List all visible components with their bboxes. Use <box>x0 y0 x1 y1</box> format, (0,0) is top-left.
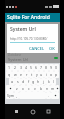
button[interactable]: OK <box>48 46 56 51</box>
button[interactable]: 4 <box>24 64 29 71</box>
button[interactable]: Back <box>12 107 21 116</box>
staticText: m <box>51 86 55 91</box>
staticText: u <box>40 72 43 77</box>
button[interactable]: u <box>39 71 44 78</box>
button[interactable]: p <box>54 71 59 78</box>
button[interactable]: . <box>46 92 51 99</box>
button[interactable]: i <box>44 71 49 78</box>
button[interactable]: 3 <box>18 64 24 71</box>
button[interactable]: l <box>51 78 56 85</box>
button[interactable] <box>6 85 14 92</box>
button[interactable]: s <box>15 78 21 85</box>
button[interactable]: 0 <box>54 64 59 71</box>
button[interactable]: a <box>9 78 15 85</box>
button[interactable]: d <box>21 78 26 85</box>
staticText: p <box>55 72 58 77</box>
staticText: , <box>16 93 17 98</box>
staticText: z <box>16 86 18 91</box>
button[interactable]: q <box>6 71 12 78</box>
button[interactable]: v <box>32 85 38 92</box>
button[interactable]: 7 <box>39 64 44 71</box>
staticText: 4 <box>25 65 28 70</box>
staticText: g <box>32 79 35 84</box>
staticText: d <box>22 79 25 84</box>
button[interactable]: z <box>14 85 20 92</box>
button[interactable]: x <box>20 85 26 92</box>
button[interactable]: CANCEL <box>28 46 46 51</box>
staticText: 2 <box>14 65 17 70</box>
button[interactable]: b <box>38 85 44 92</box>
staticText: CANCEL <box>29 46 45 51</box>
button[interactable]: j <box>41 78 46 85</box>
staticText: k <box>48 79 50 84</box>
button[interactable]: 5 <box>29 64 34 71</box>
staticText: Database <box>8 53 22 57</box>
staticText: System Url <box>8 57 29 62</box>
staticText: t <box>31 72 33 77</box>
button[interactable]: m <box>50 85 56 92</box>
staticText: 8 <box>45 65 48 70</box>
staticText: 3 <box>20 65 23 70</box>
staticText: Sym <box>7 93 14 98</box>
staticText: 7 <box>40 65 43 70</box>
staticText: System Url <box>10 26 36 33</box>
staticText: b <box>40 86 43 91</box>
button[interactable]: Recent apps <box>44 107 53 116</box>
button[interactable]: 2 <box>12 64 18 71</box>
staticText: x <box>22 86 24 91</box>
staticText: h <box>37 79 40 84</box>
staticText: 0 <box>55 65 58 70</box>
staticText: http://10.105.70.130:8080/SqliteExample <box>10 37 58 41</box>
button[interactable]: t <box>29 71 34 78</box>
button[interactable]: o <box>49 71 54 78</box>
staticText: e <box>20 72 22 77</box>
button[interactable]: Home <box>28 107 37 116</box>
button[interactable]: w <box>12 71 18 78</box>
staticText: Sqlite For Android <box>7 14 50 21</box>
button[interactable]: 8 <box>44 64 49 71</box>
button[interactable]: r <box>24 71 29 78</box>
staticText: OK <box>49 46 55 51</box>
button[interactable]: c <box>26 85 32 92</box>
staticText: w <box>14 72 17 77</box>
button[interactable]: k <box>46 78 51 85</box>
staticText: 5 <box>30 65 33 70</box>
staticText: . <box>48 93 49 98</box>
button[interactable]: 9 <box>49 64 54 71</box>
button[interactable]: h <box>36 78 41 85</box>
staticText: y <box>36 72 38 77</box>
button[interactable]: g <box>31 78 36 85</box>
staticText: 9 <box>50 65 53 70</box>
staticText: c <box>28 86 30 91</box>
button[interactable]: 1 <box>6 64 12 71</box>
staticText: a <box>11 79 13 84</box>
button[interactable]: n <box>44 85 50 92</box>
button[interactable] <box>51 92 59 99</box>
staticText: q <box>8 72 11 77</box>
staticText: i <box>46 72 47 77</box>
staticText: f <box>28 79 30 84</box>
staticText: o <box>50 72 53 77</box>
staticText: v <box>34 86 36 91</box>
staticText: 6 <box>35 65 38 70</box>
button[interactable]: y <box>34 71 39 78</box>
staticText: l <box>53 79 54 84</box>
staticText: r <box>26 72 28 77</box>
button[interactable]: 6 <box>34 64 39 71</box>
button[interactable] <box>56 85 59 92</box>
button[interactable]: f <box>26 78 31 85</box>
staticText: j <box>43 79 44 84</box>
button[interactable]: , <box>14 92 19 99</box>
staticText: n <box>46 86 49 91</box>
staticText: s <box>17 79 19 84</box>
staticText: 1 <box>8 65 11 70</box>
button[interactable]: Sym <box>6 92 14 99</box>
button[interactable]: e <box>18 71 24 78</box>
